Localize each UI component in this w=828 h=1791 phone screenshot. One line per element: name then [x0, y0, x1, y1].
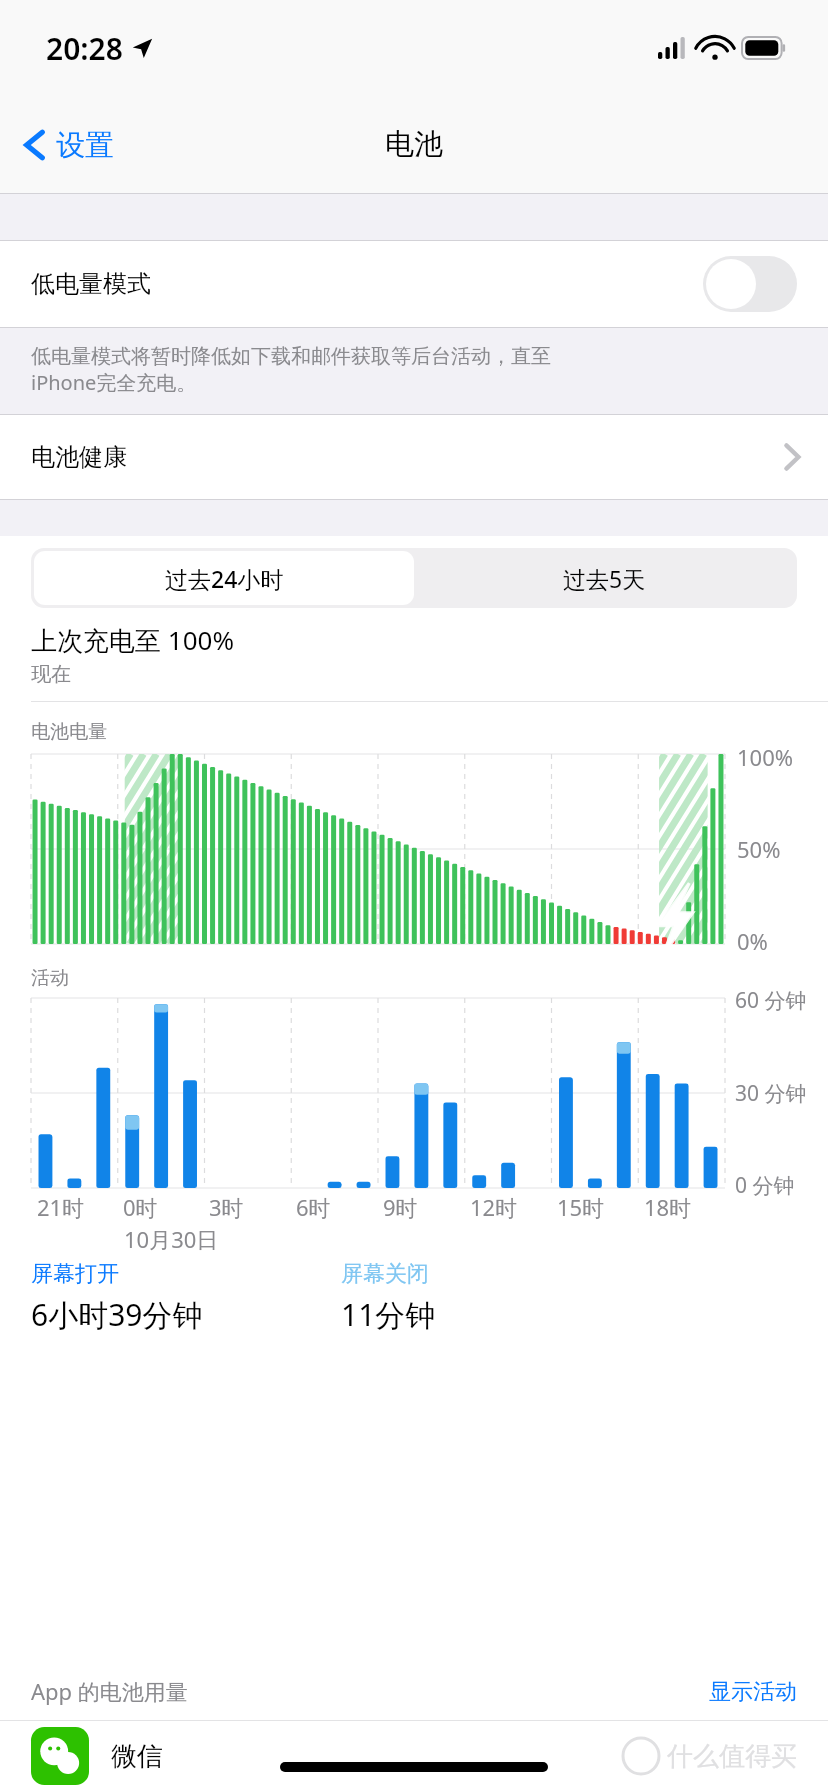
staticText: 6小时39分钟	[31, 1294, 203, 1335]
staticText: 电池健康	[31, 442, 127, 472]
staticText: 活动	[31, 966, 69, 990]
staticText: 30 分钟	[735, 1079, 807, 1108]
staticText: 微信	[111, 1740, 163, 1773]
staticText: 过去24小时	[165, 563, 284, 594]
staticText: 设置	[56, 127, 114, 164]
button[interactable]: 过去5天	[414, 551, 794, 605]
button[interactable]: 显示活动	[709, 1678, 797, 1706]
staticText: 低电量模式	[31, 269, 151, 299]
staticText: 12时	[470, 1192, 518, 1222]
staticText: 屏幕关闭	[341, 1260, 429, 1288]
staticText: 6时	[296, 1192, 331, 1222]
staticText: 9时	[383, 1192, 418, 1222]
staticText: 屏幕打开	[31, 1260, 119, 1288]
button[interactable]: 低电量模式	[0, 241, 828, 327]
staticText: 什么值得买	[667, 1740, 797, 1773]
staticText: 21时	[37, 1192, 85, 1222]
staticText: 现在	[31, 662, 71, 687]
staticText: 3时	[209, 1192, 244, 1222]
staticText: 11分钟	[341, 1294, 436, 1335]
staticText: 过去5天	[563, 563, 646, 594]
button[interactable]: 设置	[22, 125, 114, 165]
staticText: 0 分钟	[735, 1171, 795, 1200]
staticText: 电池	[385, 126, 443, 163]
staticText: 电池电量	[31, 720, 107, 744]
staticText: 60 分钟	[735, 986, 807, 1015]
staticText: 0%	[737, 926, 768, 956]
staticText: 低电量模式将暂时降低如下载和邮件获取等后台活动，直至	[31, 344, 551, 369]
staticText: iPhone完全充电。	[31, 369, 197, 396]
staticText: 显示活动	[709, 1678, 797, 1706]
staticText: 10月30日	[124, 1224, 219, 1254]
staticText: 100%	[737, 742, 794, 772]
button[interactable]: 低电量模式开关	[703, 256, 797, 312]
staticText: App 的电池用量	[31, 1676, 188, 1706]
staticText: 18时	[644, 1192, 692, 1222]
button[interactable]: 微信	[0, 1721, 828, 1791]
staticText: 15时	[557, 1192, 605, 1222]
other: 电池健康	[782, 440, 802, 474]
staticText: 50%	[737, 834, 781, 864]
staticText: 0时	[123, 1192, 158, 1222]
staticText: 上次充电至 100%	[31, 622, 234, 658]
button[interactable]: 过去24小时	[34, 551, 414, 605]
staticText: 20:28	[46, 28, 123, 69]
button[interactable]: 电池健康	[0, 415, 828, 499]
